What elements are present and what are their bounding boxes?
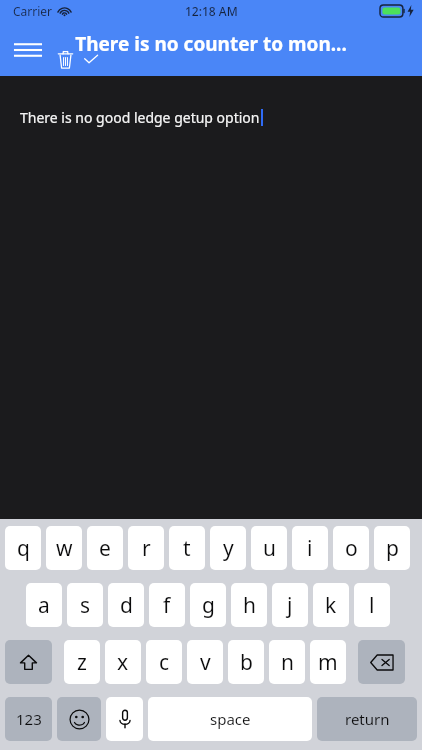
staticText: x xyxy=(117,648,129,677)
button[interactable]: c xyxy=(146,640,182,684)
button[interactable]: Done xyxy=(78,46,104,72)
button[interactable]: w xyxy=(46,526,82,570)
button[interactable]: Dictation xyxy=(106,697,143,741)
staticText: o xyxy=(345,534,358,563)
button[interactable]: j xyxy=(272,583,308,627)
button[interactable]: k xyxy=(313,583,349,627)
button[interactable]: d xyxy=(108,583,144,627)
button[interactable]: z xyxy=(64,640,100,684)
button[interactable]: l xyxy=(354,583,390,627)
staticText: Carrier xyxy=(13,3,53,19)
button[interactable]: t xyxy=(169,526,205,570)
staticText: c xyxy=(159,648,170,677)
staticText: d xyxy=(120,591,133,620)
staticText: w xyxy=(56,534,73,563)
button[interactable]: p xyxy=(374,526,410,570)
staticText: b xyxy=(240,648,253,677)
button[interactable]: b xyxy=(228,640,264,684)
staticText: j xyxy=(287,591,293,620)
button[interactable]: Backspace xyxy=(358,640,405,684)
staticText: z xyxy=(77,648,87,677)
staticText: u xyxy=(263,534,276,563)
staticText: There is no counter to mon... xyxy=(75,31,347,57)
button[interactable]: x xyxy=(105,640,141,684)
staticText: f xyxy=(163,591,171,620)
staticText: return xyxy=(345,709,390,729)
button[interactable]: 123 xyxy=(5,697,52,741)
staticText: n xyxy=(281,648,294,677)
button[interactable]: r xyxy=(128,526,164,570)
button[interactable]: space xyxy=(148,697,312,741)
button[interactable]: s xyxy=(67,583,103,627)
button[interactable]: Emoji xyxy=(57,697,101,741)
button[interactable]: h xyxy=(231,583,267,627)
button[interactable]: o xyxy=(333,526,369,570)
staticText: v xyxy=(200,648,211,677)
button[interactable]: y xyxy=(210,526,246,570)
staticText: m xyxy=(318,648,338,677)
button[interactable]: i xyxy=(292,526,328,570)
staticText: h xyxy=(243,591,256,620)
staticText: q xyxy=(17,534,30,563)
staticText: 123 xyxy=(16,709,42,729)
button[interactable]: Menu xyxy=(8,30,48,70)
staticText: r xyxy=(142,534,151,563)
staticText: i xyxy=(307,534,313,563)
button[interactable]: n xyxy=(269,640,305,684)
staticText: l xyxy=(369,591,375,620)
staticText: t xyxy=(183,534,191,563)
staticText: g xyxy=(202,591,215,620)
button[interactable]: e xyxy=(87,526,123,570)
button[interactable]: g xyxy=(190,583,226,627)
staticText: 12:18 AM xyxy=(185,3,238,19)
staticText: p xyxy=(386,534,399,563)
staticText: s xyxy=(80,591,91,620)
button[interactable]: m xyxy=(310,640,346,684)
staticText: space xyxy=(210,709,251,729)
staticText: There is no good ledge getup option xyxy=(20,108,260,127)
button[interactable]: q xyxy=(5,526,41,570)
button[interactable]: v xyxy=(187,640,223,684)
button[interactable]: Delete xyxy=(50,44,80,74)
button[interactable]: u xyxy=(251,526,287,570)
staticText: y xyxy=(223,534,234,563)
button[interactable]: Shift xyxy=(5,640,52,684)
button[interactable]: return xyxy=(317,697,417,741)
button[interactable]: a xyxy=(26,583,62,627)
button[interactable]: There is no good ledge getup option xyxy=(0,76,422,519)
staticText: k xyxy=(325,591,337,620)
button[interactable]: f xyxy=(149,583,185,627)
staticText: e xyxy=(99,534,111,563)
staticText: a xyxy=(38,591,50,620)
